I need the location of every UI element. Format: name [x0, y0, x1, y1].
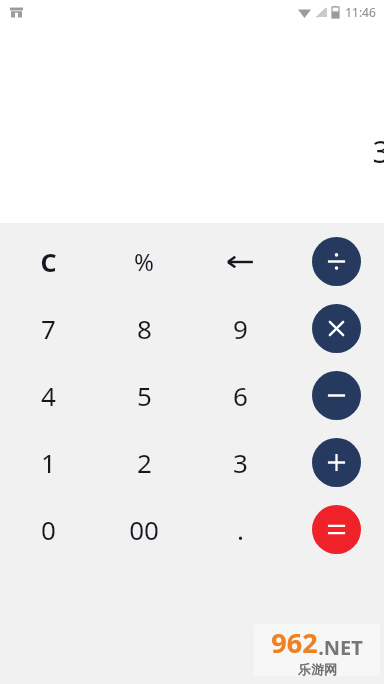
staticText: 5	[137, 378, 152, 413]
button[interactable]: C	[0, 228, 96, 295]
button[interactable]: Minus	[288, 362, 384, 429]
staticText: 3	[233, 445, 248, 480]
button[interactable]: 8	[96, 295, 192, 362]
staticText: 00	[129, 512, 159, 547]
button[interactable]: Equals	[288, 496, 384, 563]
staticText: 1	[41, 445, 56, 480]
button[interactable]: Multiply	[288, 295, 384, 362]
staticText: 2	[137, 445, 152, 480]
other: Equals	[312, 505, 361, 554]
staticText: 3	[372, 131, 384, 172]
button[interactable]: %	[96, 228, 192, 295]
button[interactable]: Backspace	[192, 228, 288, 295]
staticText: 6	[233, 378, 248, 413]
button[interactable]: 3	[192, 429, 288, 496]
button[interactable]: 00	[96, 496, 192, 563]
staticText: 11:46	[345, 4, 376, 20]
other: Backspace	[220, 242, 260, 282]
button[interactable]: 6	[192, 362, 288, 429]
staticText: 4	[41, 378, 56, 413]
staticText: C	[40, 245, 57, 279]
staticText: 7	[41, 311, 56, 346]
staticText: 9	[233, 311, 248, 346]
other: Minus	[312, 371, 361, 420]
button[interactable]: 5	[96, 362, 192, 429]
staticText: 乐游网	[298, 661, 337, 676]
button[interactable]: 1	[0, 429, 96, 496]
button[interactable]: 7	[0, 295, 96, 362]
staticText: .NET	[318, 634, 363, 661]
staticText: .	[237, 512, 244, 547]
button[interactable]: 9	[192, 295, 288, 362]
other: Divide	[312, 237, 361, 286]
button[interactable]: 2	[96, 429, 192, 496]
staticText: %	[134, 245, 154, 278]
other: Multiply	[312, 304, 361, 353]
staticText: 962	[271, 624, 318, 661]
staticText: 8	[137, 311, 152, 346]
staticText: 0	[41, 512, 56, 547]
button[interactable]: .	[192, 496, 288, 563]
button[interactable]: 0	[0, 496, 96, 563]
button[interactable]: Plus	[288, 429, 384, 496]
button[interactable]: 4	[0, 362, 96, 429]
other: Plus	[312, 438, 361, 487]
button[interactable]: Divide	[288, 228, 384, 295]
